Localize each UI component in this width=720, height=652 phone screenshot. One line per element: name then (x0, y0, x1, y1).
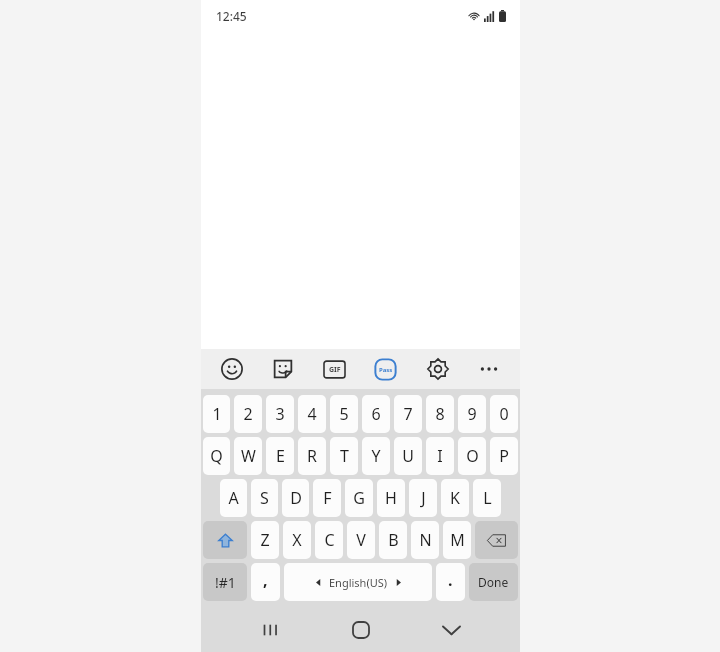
staticText: E (276, 445, 285, 467)
staticText: 4 (307, 403, 317, 425)
button[interactable]: More options (478, 358, 500, 380)
button[interactable]: , (251, 563, 280, 601)
staticText: X (292, 529, 302, 551)
staticText: GIF (329, 365, 341, 375)
button[interactable]: O (458, 437, 486, 475)
staticText: L (483, 487, 492, 509)
button[interactable]: 3 (266, 395, 294, 433)
button[interactable]: Space, English (US) (284, 563, 432, 601)
staticText: 5 (339, 403, 349, 425)
button[interactable]: R (298, 437, 326, 475)
button[interactable]: Y (362, 437, 390, 475)
button[interactable]: A (220, 479, 247, 517)
button[interactable]: . (436, 563, 465, 601)
button[interactable]: Backspace (475, 521, 518, 559)
button[interactable]: P (490, 437, 518, 475)
staticText: H (385, 487, 397, 509)
staticText: 7 (403, 403, 413, 425)
staticText: P (499, 445, 509, 467)
button[interactable]: !#1 (203, 563, 247, 601)
button[interactable]: F (313, 479, 341, 517)
staticText: B (388, 529, 399, 551)
button[interactable]: X (283, 521, 311, 559)
button[interactable]: Emoji (221, 358, 243, 380)
button[interactable]: K (441, 479, 469, 517)
staticText: N (419, 529, 432, 551)
staticText: I (437, 445, 443, 467)
staticText: . (448, 569, 453, 591)
button[interactable]: Z (251, 521, 279, 559)
staticText: J (421, 487, 426, 509)
button[interactable]: Stickers (272, 358, 294, 380)
staticText: G (353, 487, 365, 509)
button[interactable]: Home (339, 608, 383, 652)
staticText: O (466, 445, 479, 467)
staticText: M (450, 529, 465, 551)
staticText: 12:45 (216, 8, 247, 24)
button[interactable]: L (473, 479, 501, 517)
staticText: Done (478, 574, 509, 590)
staticText: S (260, 487, 269, 509)
button[interactable]: Samsung Pass (374, 358, 397, 381)
staticText: 3 (275, 403, 285, 425)
button[interactable]: T (330, 437, 358, 475)
staticText: T (340, 445, 349, 467)
button[interactable]: W (234, 437, 262, 475)
button[interactable]: 2 (234, 395, 262, 433)
staticText: Pass (379, 366, 393, 374)
staticText: V (356, 529, 366, 551)
button[interactable]: 0 (490, 395, 518, 433)
button[interactable]: GIF (324, 359, 345, 380)
staticText: K (450, 487, 460, 509)
staticText: 8 (435, 403, 445, 425)
button[interactable]: M (443, 521, 471, 559)
button[interactable]: Q (203, 437, 230, 475)
button[interactable]: S (251, 479, 278, 517)
staticText: W (241, 445, 256, 467)
button[interactable]: Hide keyboard (429, 608, 473, 652)
button[interactable]: 6 (362, 395, 390, 433)
button[interactable]: N (411, 521, 439, 559)
staticText: C (324, 529, 335, 551)
button[interactable]: C (315, 521, 343, 559)
button[interactable]: J (409, 479, 437, 517)
button[interactable]: 8 (426, 395, 454, 433)
staticText: 6 (371, 403, 381, 425)
button[interactable]: Settings (427, 358, 449, 380)
staticText: Z (260, 529, 270, 551)
staticText: Q (210, 445, 223, 467)
button[interactable]: 4 (298, 395, 326, 433)
button[interactable]: Shift (203, 521, 247, 559)
staticText: A (228, 487, 239, 509)
button[interactable]: D (282, 479, 309, 517)
staticText: 2 (243, 403, 253, 425)
button[interactable]: V (347, 521, 375, 559)
button[interactable]: H (377, 479, 405, 517)
button[interactable]: 7 (394, 395, 422, 433)
staticText: R (307, 445, 317, 467)
staticText: 1 (212, 403, 222, 425)
staticText: 0 (499, 403, 509, 425)
button[interactable]: G (345, 479, 373, 517)
button[interactable]: Recent apps (248, 608, 292, 652)
button[interactable]: U (394, 437, 422, 475)
staticText: !#1 (215, 573, 236, 592)
staticText: Y (371, 445, 381, 467)
staticText: U (402, 445, 414, 467)
button[interactable]: I (426, 437, 454, 475)
button[interactable]: 9 (458, 395, 486, 433)
staticText: , (263, 569, 268, 591)
button[interactable]: B (379, 521, 407, 559)
button[interactable]: Done (469, 563, 518, 601)
staticText: F (323, 487, 332, 509)
button[interactable]: 5 (330, 395, 358, 433)
staticText: D (290, 487, 302, 509)
button[interactable]: 1 (203, 395, 230, 433)
button[interactable]: E (266, 437, 294, 475)
staticText: English(US) (329, 575, 388, 590)
staticText: 9 (467, 403, 477, 425)
